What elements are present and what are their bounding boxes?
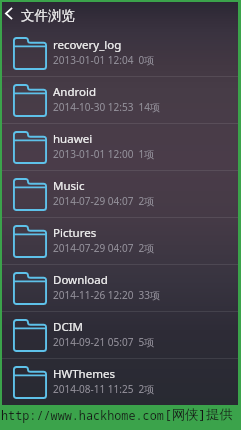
staticText: Music [53, 178, 85, 194]
button[interactable]: Download [2, 265, 238, 311]
button[interactable]: DCIM [2, 312, 238, 358]
staticText: 2014-09-21 05:07 5项 [53, 335, 155, 349]
staticText: 文件浏览 [21, 7, 75, 24]
staticText: DCIM [53, 319, 83, 335]
staticText: Download [53, 272, 108, 288]
button[interactable]: recovery_log [2, 30, 238, 76]
staticText: 2013-01-01 12:04 0项 [53, 53, 155, 67]
staticText: 2014-07-29 04:07 2项 [53, 241, 155, 255]
staticText: Pictures [53, 225, 97, 241]
staticText: 2014-08-11 11:25 2项 [53, 382, 155, 396]
button[interactable]: HWThemes [2, 359, 238, 405]
staticText: http://www.hackhome.com [1, 407, 164, 423]
staticText: 2013-01-01 12:00 1项 [53, 147, 155, 161]
button[interactable]: Music [2, 171, 238, 217]
staticText: 2014-11-26 12:20 33项 [53, 288, 160, 302]
button[interactable]: huawei [2, 124, 238, 170]
button[interactable]: 返回 [2, 2, 17, 25]
staticText: recovery_log [53, 37, 122, 53]
button[interactable]: Android [2, 77, 238, 123]
staticText: huawei [53, 131, 93, 147]
staticText: Android [53, 84, 97, 100]
button[interactable]: Pictures [2, 218, 238, 264]
staticText: 2014-07-29 04:07 2项 [53, 194, 155, 208]
staticText: HWThemes [53, 366, 115, 382]
staticText: 2014-10-30 12:53 14项 [53, 100, 160, 114]
staticText: [网侠]提供 [164, 405, 233, 423]
